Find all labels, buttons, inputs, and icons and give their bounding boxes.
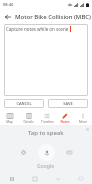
button[interactable]: Timeline — [38, 111, 56, 125]
staticText: Timeline — [41, 120, 54, 124]
staticText: Google — [37, 163, 55, 170]
button[interactable]: Keyboard — [65, 148, 74, 157]
button[interactable]: Close — [85, 127, 90, 132]
staticText: CANCEL — [16, 101, 32, 106]
staticText: Details — [23, 120, 34, 124]
button[interactable]: Recents — [0, 173, 23, 184]
button[interactable]: Hide keyboard — [69, 173, 92, 184]
button[interactable]: More — [74, 111, 92, 125]
button[interactable]: CANCEL — [4, 99, 44, 108]
button[interactable]: Notes — [56, 111, 74, 125]
button[interactable]: Map — [0, 111, 19, 125]
button[interactable]: Back — [46, 173, 69, 184]
staticText: SAVE — [63, 101, 73, 106]
staticText: Tap to speak — [28, 129, 64, 137]
button[interactable]: Microphone — [38, 144, 55, 161]
button[interactable]: Home — [23, 173, 46, 184]
button[interactable]: Settings — [19, 148, 28, 157]
staticText: Notes — [60, 120, 70, 124]
button[interactable]: Details — [19, 111, 38, 125]
button[interactable]: Back — [0, 9, 15, 24]
button[interactable]: SAVE — [48, 99, 88, 108]
staticText: Map — [6, 120, 13, 124]
staticText: Capture notes while on scene — [6, 26, 69, 32]
staticText: More — [79, 120, 87, 124]
staticText: Motor Bike Collision (MBC) — [15, 13, 91, 21]
button[interactable]: Capture notes while on scene — [4, 24, 88, 96]
staticText: 08:40 — [3, 2, 14, 7]
